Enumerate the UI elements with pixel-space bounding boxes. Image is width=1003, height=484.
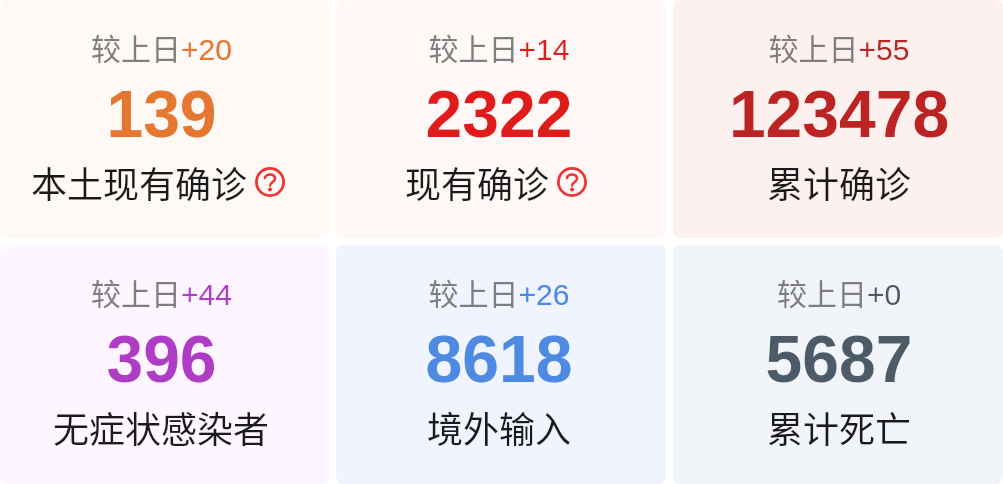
staticText: 8618 [336, 322, 664, 396]
staticText: 境外输入 [427, 401, 572, 453]
staticText: 123478 [674, 77, 1003, 151]
button[interactable]: 较上日+14 [336, 0, 666, 238]
button[interactable]: 较上日+26 [336, 245, 666, 484]
staticText: 较上日+20 [0, 25, 326, 68]
button[interactable]: 较上日+55 [673, 0, 1003, 238]
staticText: 较上日+44 [0, 270, 326, 313]
staticText: 139 [0, 77, 326, 151]
staticText: 5687 [674, 322, 1003, 396]
staticText: 累计确诊 [767, 156, 912, 208]
button[interactable]: 说明 [557, 167, 587, 197]
staticText: 较上日+26 [336, 270, 664, 313]
staticText: 无症状感染者 [53, 401, 270, 453]
staticText: 本土现有确诊 [31, 156, 248, 208]
button[interactable]: 较上日+20 [0, 0, 329, 238]
staticText: 累计死亡 [767, 401, 912, 453]
staticText: 较上日+0 [674, 270, 1003, 313]
button[interactable]: 较上日+44 [0, 245, 329, 484]
button[interactable]: 较上日+0 [673, 245, 1003, 484]
staticText: 较上日+55 [674, 25, 1003, 68]
staticText: 2322 [336, 77, 664, 151]
staticText: 现有确诊 [405, 156, 550, 208]
staticText: 较上日+14 [336, 25, 664, 68]
staticText: 396 [0, 322, 326, 396]
button[interactable]: 说明 [255, 167, 285, 197]
